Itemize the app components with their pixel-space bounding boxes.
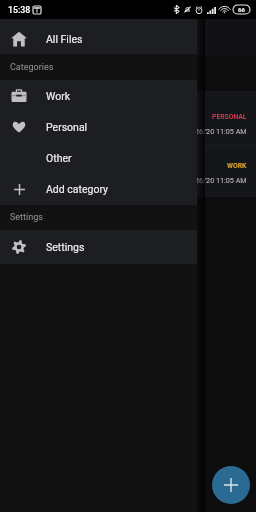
staticText: Other — [46, 152, 72, 164]
button[interactable]: Add category — [0, 173, 197, 205]
button[interactable]: Work — [0, 80, 197, 111]
staticText: All Files — [46, 33, 83, 45]
button[interactable]: Other — [0, 142, 197, 173]
staticText: 10/26/20 11:05 AM — [184, 127, 247, 135]
staticText: Work — [46, 90, 71, 102]
staticText: 66 — [238, 6, 245, 13]
staticText: Settings — [10, 212, 43, 223]
staticText: 15:38 — [8, 5, 31, 15]
button[interactable]: Settings — [0, 230, 197, 264]
staticText: Personal — [46, 121, 88, 133]
button[interactable]: Personal — [0, 111, 197, 142]
staticText: WORK — [227, 162, 247, 170]
staticText: PERSONAL — [212, 113, 247, 121]
staticText: Categories — [10, 62, 54, 73]
button[interactable]: All Files — [0, 19, 197, 54]
button[interactable]: Add note — [212, 466, 250, 504]
staticText: Settings — [46, 241, 85, 253]
staticText: Add category — [46, 183, 109, 195]
staticText: 10/26/20 11:05 AM — [184, 176, 247, 184]
